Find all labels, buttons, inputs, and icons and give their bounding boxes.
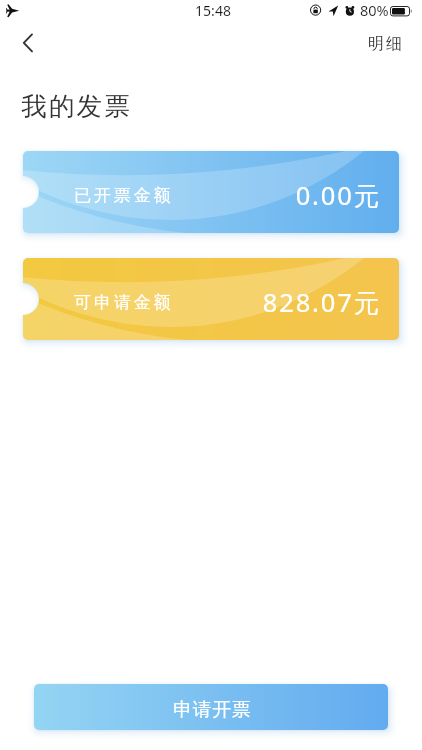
button[interactable]: 申请开票 (34, 684, 388, 730)
button[interactable]: 明细 (354, 26, 412, 60)
staticText: 0.00元 (23, 178, 381, 213)
staticText: 可申请金额 (74, 292, 174, 313)
staticText: 申请开票 (173, 698, 251, 722)
staticText: 80% (360, 0, 389, 20)
staticText: 已开票金额 (74, 185, 174, 206)
button[interactable]: Back (10, 26, 46, 60)
staticText: 828.07元 (23, 285, 381, 320)
staticText: 明细 (368, 34, 405, 54)
button[interactable]: 已开票金额 (23, 151, 399, 233)
button[interactable]: 可申请金额 (23, 258, 399, 340)
staticText: 我的发票 (21, 90, 133, 122)
staticText: 15:48 (191, 1, 235, 20)
